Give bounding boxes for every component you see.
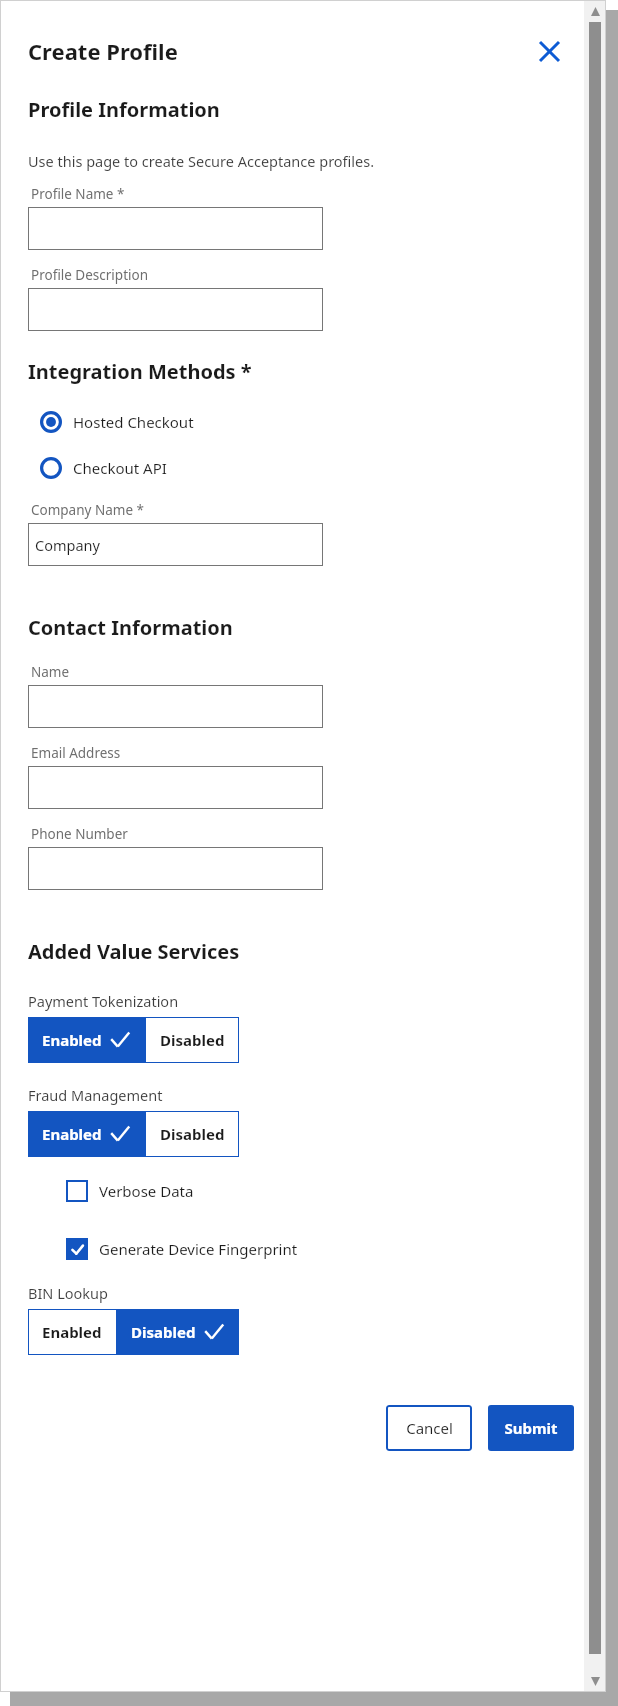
staticText: Hosted Checkout bbox=[73, 412, 194, 432]
button[interactable]: Generate Device Fingerprint bbox=[66, 1229, 298, 1269]
button[interactable]: Submit bbox=[488, 1405, 574, 1451]
staticText: Email Address bbox=[31, 744, 121, 762]
staticText: Verbose Data bbox=[99, 1181, 194, 1201]
button[interactable]: Disabled bbox=[146, 1111, 239, 1157]
button[interactable]: Enabled bbox=[28, 1309, 116, 1355]
staticText: Generate Device Fingerprint bbox=[99, 1239, 298, 1259]
button[interactable] bbox=[28, 207, 323, 250]
staticText: Disabled bbox=[160, 1030, 225, 1050]
staticText: Profile Description bbox=[31, 266, 149, 284]
staticText: Profile Name * bbox=[31, 185, 125, 203]
button[interactable]: Checkout API bbox=[40, 449, 167, 487]
staticText: Create Profile bbox=[28, 36, 178, 66]
staticText: Checkout API bbox=[73, 458, 167, 478]
button[interactable]: Scroll down bbox=[584, 1670, 606, 1692]
staticText: Submit bbox=[504, 1418, 558, 1438]
staticText: Profile Information bbox=[28, 96, 220, 123]
staticText: Cancel bbox=[406, 1418, 453, 1438]
button[interactable]: Enabled bbox=[28, 1111, 145, 1157]
staticText: BIN Lookup bbox=[28, 1283, 108, 1303]
staticText: Enabled bbox=[42, 1124, 102, 1144]
staticText: Integration Methods * bbox=[28, 358, 252, 385]
button[interactable] bbox=[28, 847, 323, 890]
staticText: Enabled bbox=[42, 1030, 102, 1050]
button[interactable]: Scroll up bbox=[584, 0, 606, 22]
staticText: Phone Number bbox=[31, 825, 128, 843]
button[interactable]: Disabled bbox=[117, 1309, 239, 1355]
staticText: Use this page to create Secure Acceptanc… bbox=[28, 151, 375, 171]
staticText: Enabled bbox=[42, 1322, 102, 1342]
staticText: Payment Tokenization bbox=[28, 991, 179, 1011]
staticText: Company bbox=[35, 535, 100, 555]
button[interactable] bbox=[28, 685, 323, 728]
staticText: Fraud Management bbox=[28, 1085, 163, 1105]
button[interactable]: Close bbox=[528, 30, 570, 72]
staticText: Company Name * bbox=[31, 501, 144, 519]
button[interactable]: Enabled bbox=[28, 1017, 145, 1063]
button[interactable]: Cancel bbox=[386, 1405, 472, 1451]
button[interactable] bbox=[28, 288, 323, 331]
button[interactable]: Company bbox=[28, 523, 323, 566]
button[interactable]: Verbose Data bbox=[66, 1171, 194, 1211]
staticText: Contact Information bbox=[28, 614, 233, 641]
button[interactable] bbox=[28, 766, 323, 809]
button[interactable]: Disabled bbox=[146, 1017, 239, 1063]
staticText: Disabled bbox=[160, 1124, 225, 1144]
staticText: Name bbox=[31, 663, 70, 681]
button[interactable]: Hosted Checkout bbox=[40, 403, 194, 441]
staticText: Added Value Services bbox=[28, 938, 240, 965]
staticText: Disabled bbox=[131, 1322, 196, 1342]
